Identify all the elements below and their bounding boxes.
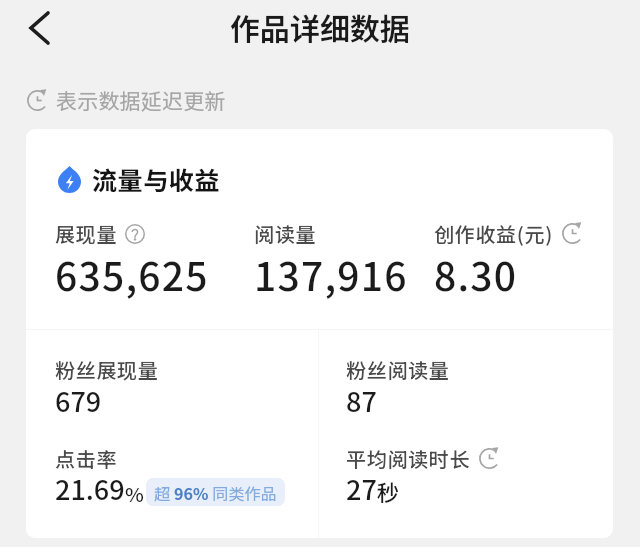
- button[interactable]: Back: [11, 0, 67, 56]
- staticText: 点击率: [55, 444, 118, 473]
- staticText: 创作收益(元): [434, 219, 554, 248]
- staticText: 平均阅读时长: [346, 444, 471, 473]
- staticText: 96%: [174, 481, 209, 504]
- staticText: 粉丝展现量: [55, 355, 159, 384]
- staticText: 表示数据延迟更新: [56, 85, 226, 115]
- staticText: 同类作品: [209, 481, 277, 504]
- staticText: 27: [346, 469, 377, 508]
- staticText: 679: [55, 381, 102, 420]
- staticText: 阅读量: [254, 219, 317, 248]
- staticText: 635,625: [55, 246, 209, 302]
- staticText: 展现量: [55, 219, 118, 248]
- staticText: 粉丝阅读量: [346, 355, 450, 384]
- staticText: 137,916: [254, 246, 408, 302]
- staticText: %: [125, 479, 144, 508]
- staticText: 作品详细数据: [230, 5, 410, 48]
- button[interactable]: What is impressions?: [125, 224, 145, 244]
- staticText: 秒: [377, 475, 400, 507]
- staticText: 21.69: [55, 469, 125, 508]
- staticText: 流量与收益: [92, 161, 221, 197]
- staticText: 8.30: [434, 246, 518, 302]
- staticText: 87: [346, 381, 377, 420]
- staticText: 超: [154, 481, 174, 504]
